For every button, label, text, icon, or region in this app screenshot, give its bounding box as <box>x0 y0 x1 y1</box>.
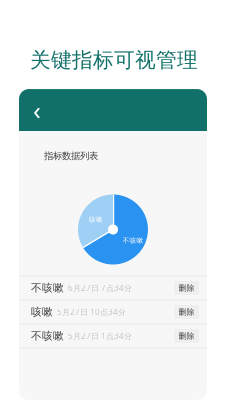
staticText: ‹ <box>33 93 41 127</box>
staticText: 不咳嗽 <box>122 236 143 245</box>
staticText: 不咳嗽 <box>31 281 64 294</box>
staticText: 删除 <box>178 331 194 341</box>
staticText: 指标数据列表 <box>44 150 98 161</box>
staticText: 5月27日 10点34分 <box>53 307 126 317</box>
staticText: 5月27日 1点34分 <box>64 331 132 341</box>
staticText: 咳嗽 <box>31 305 53 318</box>
button[interactable]: 不咳嗽 <box>19 324 207 347</box>
staticText: 删除 <box>178 307 194 317</box>
button[interactable]: 咳嗽 <box>19 300 207 323</box>
button[interactable]: Back <box>27 98 47 122</box>
staticText: 删除 <box>178 283 194 293</box>
staticText: 6月27日 7点34分 <box>64 283 132 293</box>
staticText: 咳嗽 <box>89 215 103 224</box>
staticText: 不咳嗽 <box>31 329 64 342</box>
staticText: 关键指标可视管理 <box>30 47 198 73</box>
button[interactable]: 不咳嗽 <box>19 276 207 299</box>
